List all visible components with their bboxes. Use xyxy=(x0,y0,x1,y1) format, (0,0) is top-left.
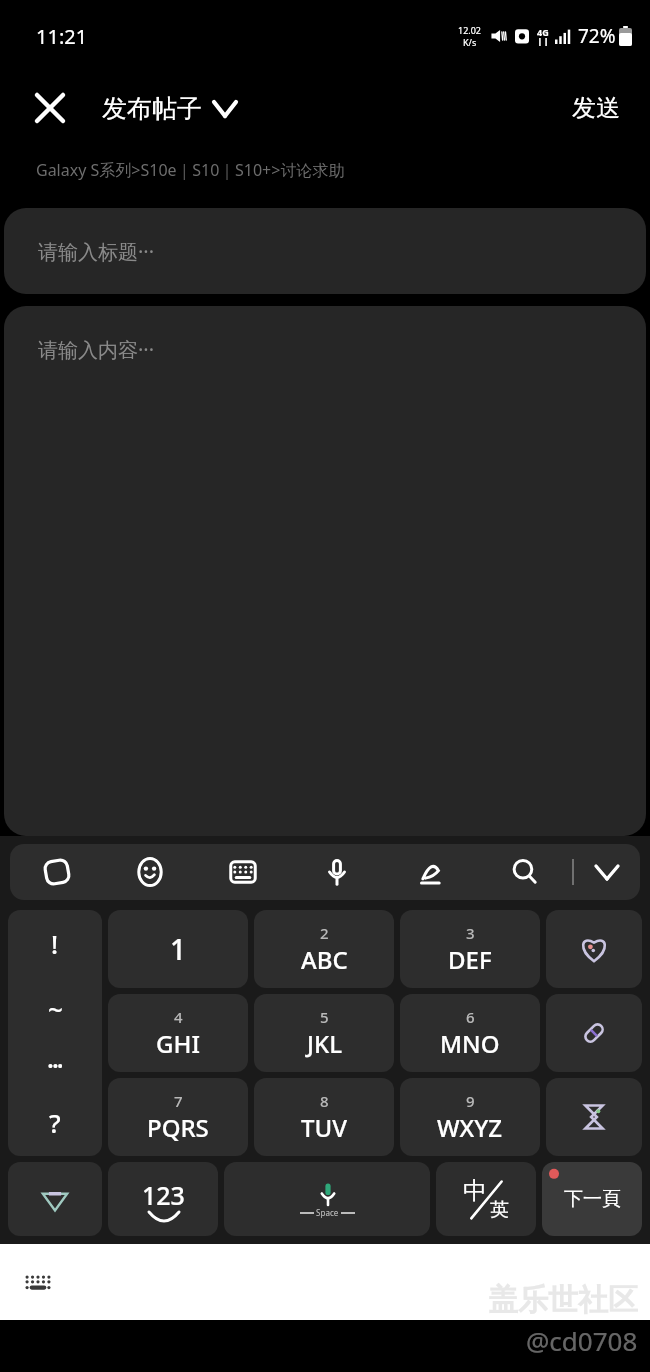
button[interactable]: 下一頁 xyxy=(542,1162,642,1236)
staticText: TUV xyxy=(301,1111,347,1144)
staticText: 2 xyxy=(320,923,329,943)
staticText: 请输入标题··· xyxy=(38,238,155,265)
staticText: 11:21 xyxy=(36,23,88,50)
button[interactable]: 2 xyxy=(254,910,394,988)
staticText: K/s xyxy=(463,36,477,48)
button[interactable]: Clipboard xyxy=(546,994,642,1072)
button[interactable]: Space xyxy=(224,1162,430,1236)
button[interactable]: 3 xyxy=(400,910,540,988)
staticText: 4 xyxy=(174,1007,183,1027)
staticText: 盖乐世社区 xyxy=(488,1281,638,1319)
button[interactable]: Voice input xyxy=(290,844,384,900)
button[interactable]: 7 xyxy=(108,1078,248,1156)
staticText: 8 xyxy=(320,1091,329,1111)
staticText: 下一頁 xyxy=(564,1187,621,1211)
button[interactable]: Hide keyboard xyxy=(574,844,640,900)
button[interactable]: History xyxy=(546,1078,642,1156)
staticText: 123 xyxy=(142,1178,185,1212)
staticText: 中 xyxy=(463,1176,487,1206)
staticText: ? xyxy=(49,1105,61,1140)
button[interactable]: 1 xyxy=(108,910,248,988)
staticText: ABC xyxy=(301,943,348,976)
button[interactable]: Galaxy S系列>S10e｜S10｜S10+>讨论求助 xyxy=(0,144,650,196)
staticText: 英 xyxy=(490,1198,509,1222)
button[interactable]: Keyboard layout xyxy=(196,844,290,900)
staticText: 72% xyxy=(578,23,616,49)
button[interactable]: Chinese English toggle xyxy=(436,1162,536,1236)
staticText: ••• xyxy=(48,1057,63,1075)
button[interactable]: 请输入标题··· xyxy=(4,208,646,294)
button[interactable]: 请输入内容··· xyxy=(4,306,646,836)
staticText: MNO xyxy=(440,1027,500,1060)
staticText: GHI xyxy=(156,1027,200,1060)
button[interactable]: 4 xyxy=(108,994,248,1072)
staticText: @cd0708 xyxy=(526,1323,638,1358)
button[interactable]: ! xyxy=(8,910,102,1156)
staticText: 12.02 xyxy=(458,24,482,36)
staticText: 请输入内容··· xyxy=(38,336,155,363)
button[interactable]: 9 xyxy=(400,1078,540,1156)
button[interactable]: 123 xyxy=(108,1162,218,1236)
staticText: 1 xyxy=(170,930,187,968)
staticText: 4G xyxy=(537,26,549,38)
button[interactable]: 5 xyxy=(254,994,394,1072)
staticText: 3 xyxy=(466,923,475,943)
staticText: 6 xyxy=(466,1007,475,1027)
staticText: 5 xyxy=(320,1007,329,1027)
staticText: 发送 xyxy=(572,93,620,123)
staticText: 发布帖子 xyxy=(102,93,202,124)
staticText: PQRS xyxy=(147,1111,209,1144)
button[interactable]: 8 xyxy=(254,1078,394,1156)
staticText: 7 xyxy=(174,1091,183,1111)
button[interactable]: Theme xyxy=(8,1162,102,1236)
staticText: Galaxy S系列>S10e｜S10｜S10+>讨论求助 xyxy=(36,159,345,181)
staticText: Space xyxy=(314,1207,341,1218)
button[interactable]: Keyboard switcher xyxy=(14,1258,62,1306)
button[interactable]: Close xyxy=(20,78,80,138)
button[interactable]: 发送 xyxy=(560,83,632,133)
button[interactable]: 发布帖子 xyxy=(96,85,242,132)
button[interactable]: Sogou input xyxy=(10,844,103,900)
button[interactable]: Emoji xyxy=(103,844,196,900)
button[interactable]: Search xyxy=(478,844,572,900)
staticText: 9 xyxy=(466,1091,475,1111)
staticText: ! xyxy=(51,926,59,961)
staticText: WXYZ xyxy=(437,1111,503,1144)
button[interactable]: Handwriting xyxy=(384,844,478,900)
staticText: JKL xyxy=(307,1027,342,1060)
staticText: ~ xyxy=(48,991,63,1026)
button[interactable]: 6 xyxy=(400,994,540,1072)
staticText: DEF xyxy=(448,943,492,976)
button[interactable]: Favorites xyxy=(546,910,642,988)
